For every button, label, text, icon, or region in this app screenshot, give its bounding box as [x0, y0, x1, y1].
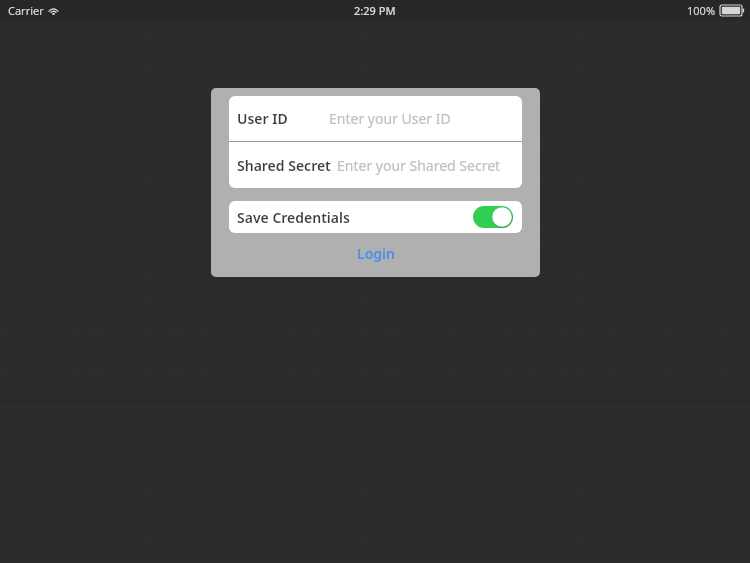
- button[interactable]: Login: [211, 235, 540, 271]
- staticText: Shared Secret: [237, 156, 331, 175]
- staticText: 100%: [687, 3, 716, 18]
- button[interactable]: User ID: [229, 96, 522, 141]
- button[interactable]: Shared Secret: [229, 142, 522, 188]
- staticText: Enter your User ID: [329, 109, 451, 128]
- staticText: Carrier: [8, 3, 44, 18]
- button[interactable]: Save Credentials toggle, on: [473, 206, 513, 228]
- staticText: Enter your Shared Secret: [337, 156, 501, 175]
- staticText: Login: [357, 244, 395, 263]
- staticText: User ID: [237, 109, 288, 128]
- button[interactable]: Save Credentials: [229, 201, 522, 233]
- staticText: 2:29 PM: [354, 3, 396, 18]
- staticText: Save Credentials: [237, 208, 350, 227]
